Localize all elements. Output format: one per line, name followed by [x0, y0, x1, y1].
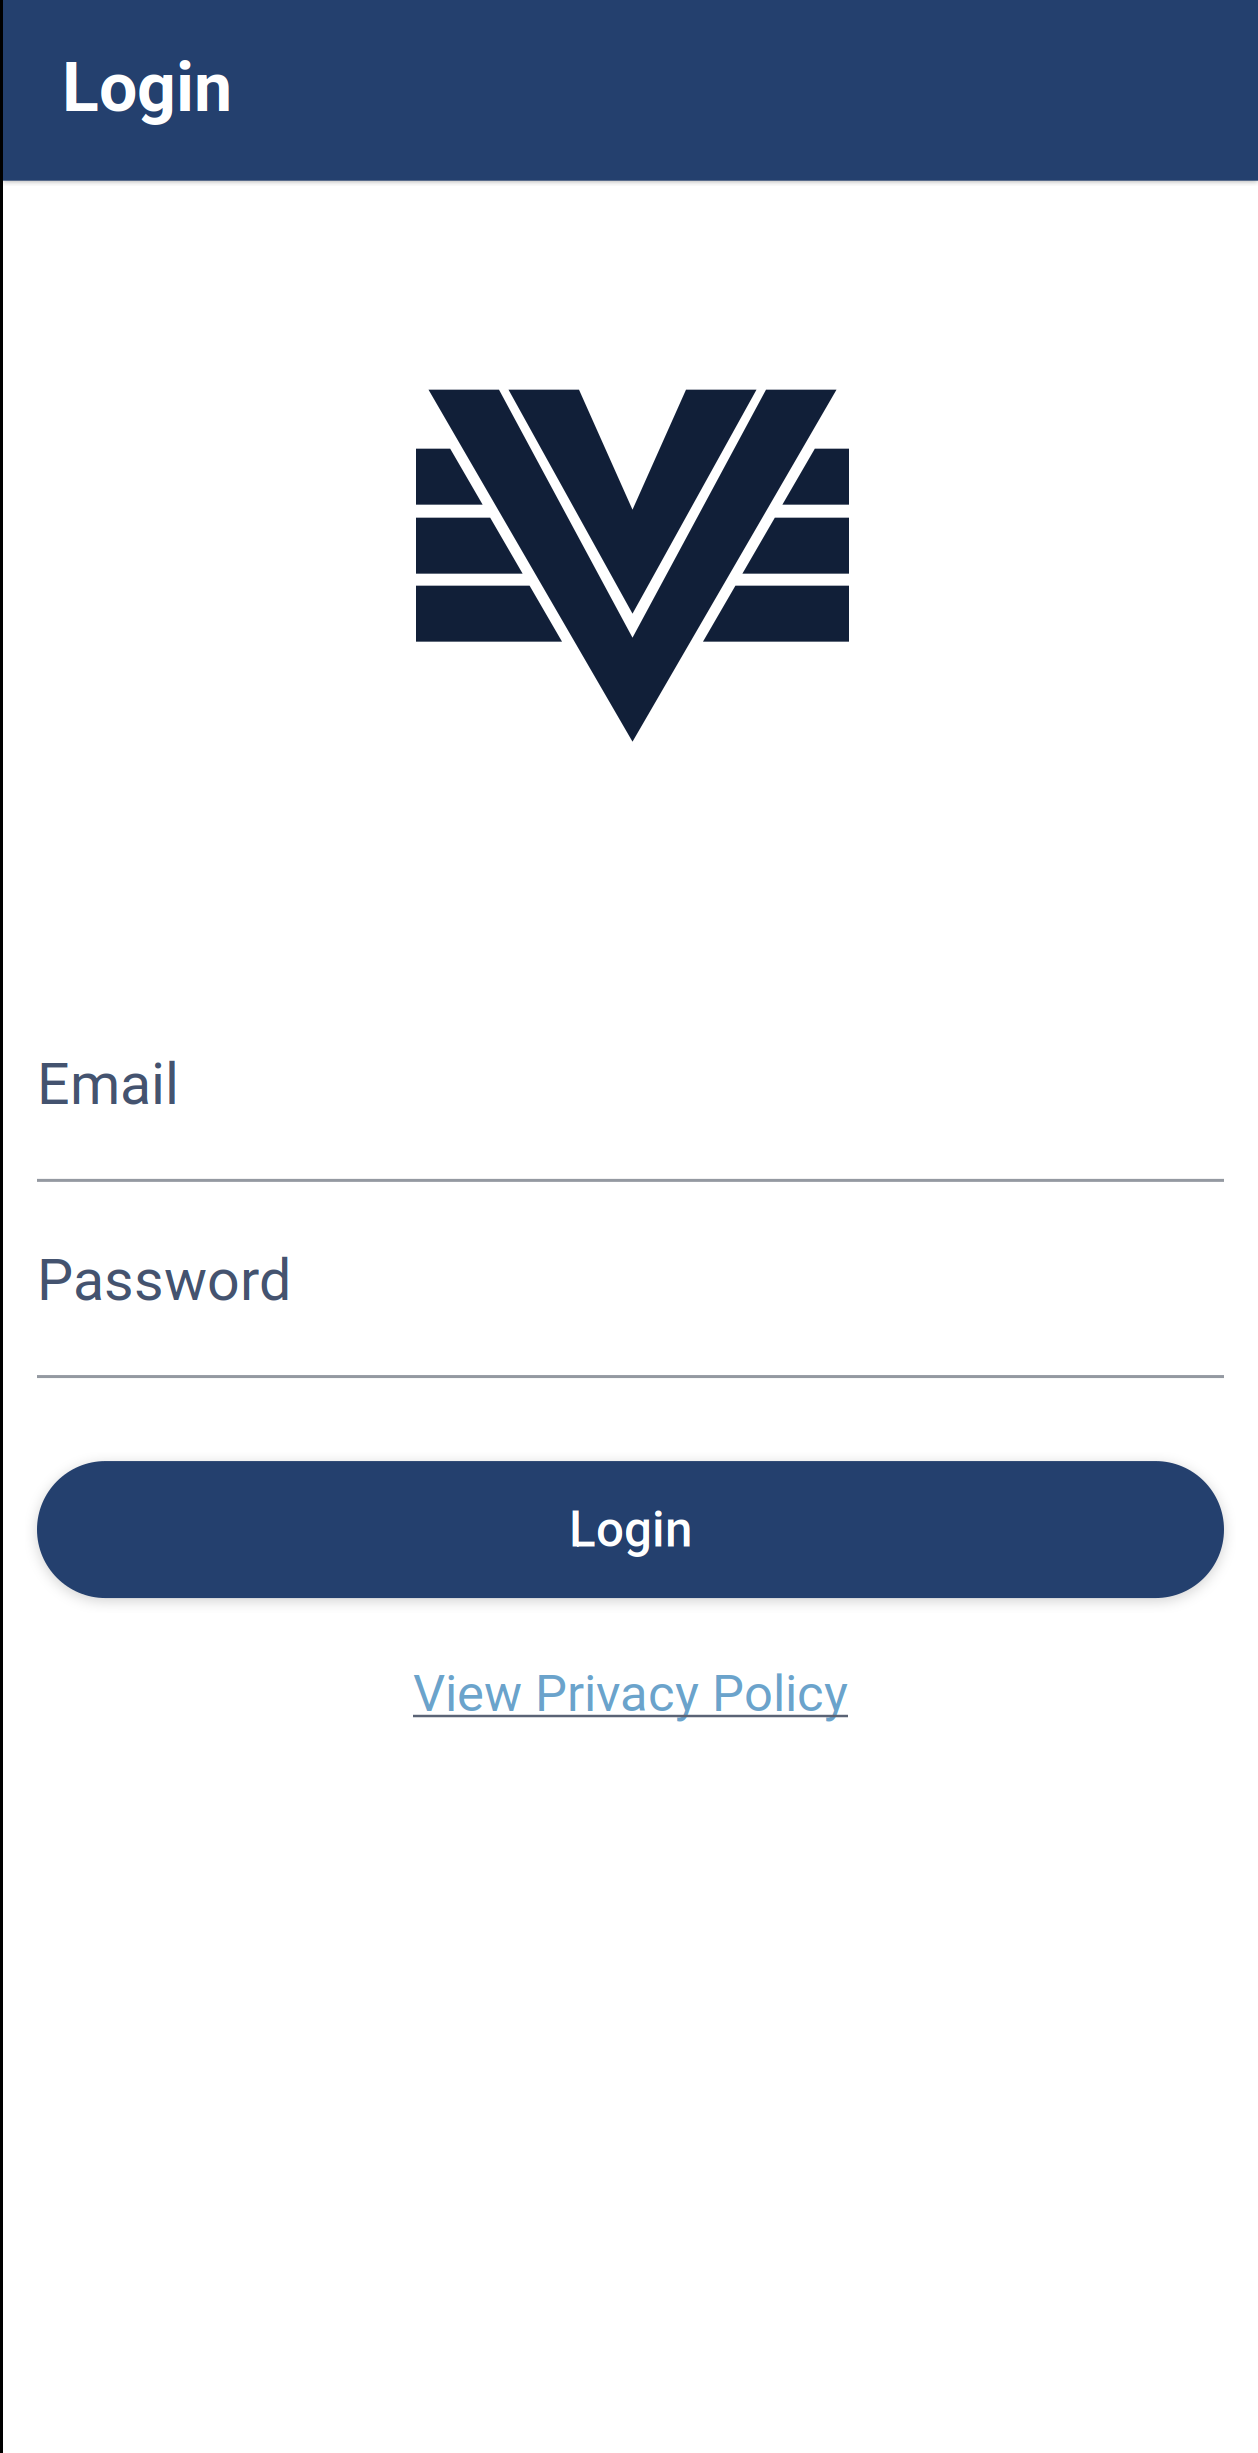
- button[interactable]: View Privacy Policy: [413, 1664, 848, 1723]
- staticText: Login: [62, 48, 232, 128]
- staticText: Password: [37, 1247, 291, 1314]
- button[interactable]: Login: [37, 1461, 1224, 1598]
- button[interactable]: Password: [37, 1247, 1224, 1378]
- button[interactable]: Email: [37, 1051, 1224, 1182]
- staticText: Login: [569, 1501, 692, 1558]
- staticText: View Privacy Policy: [413, 1664, 848, 1723]
- staticText: Email: [37, 1051, 179, 1118]
